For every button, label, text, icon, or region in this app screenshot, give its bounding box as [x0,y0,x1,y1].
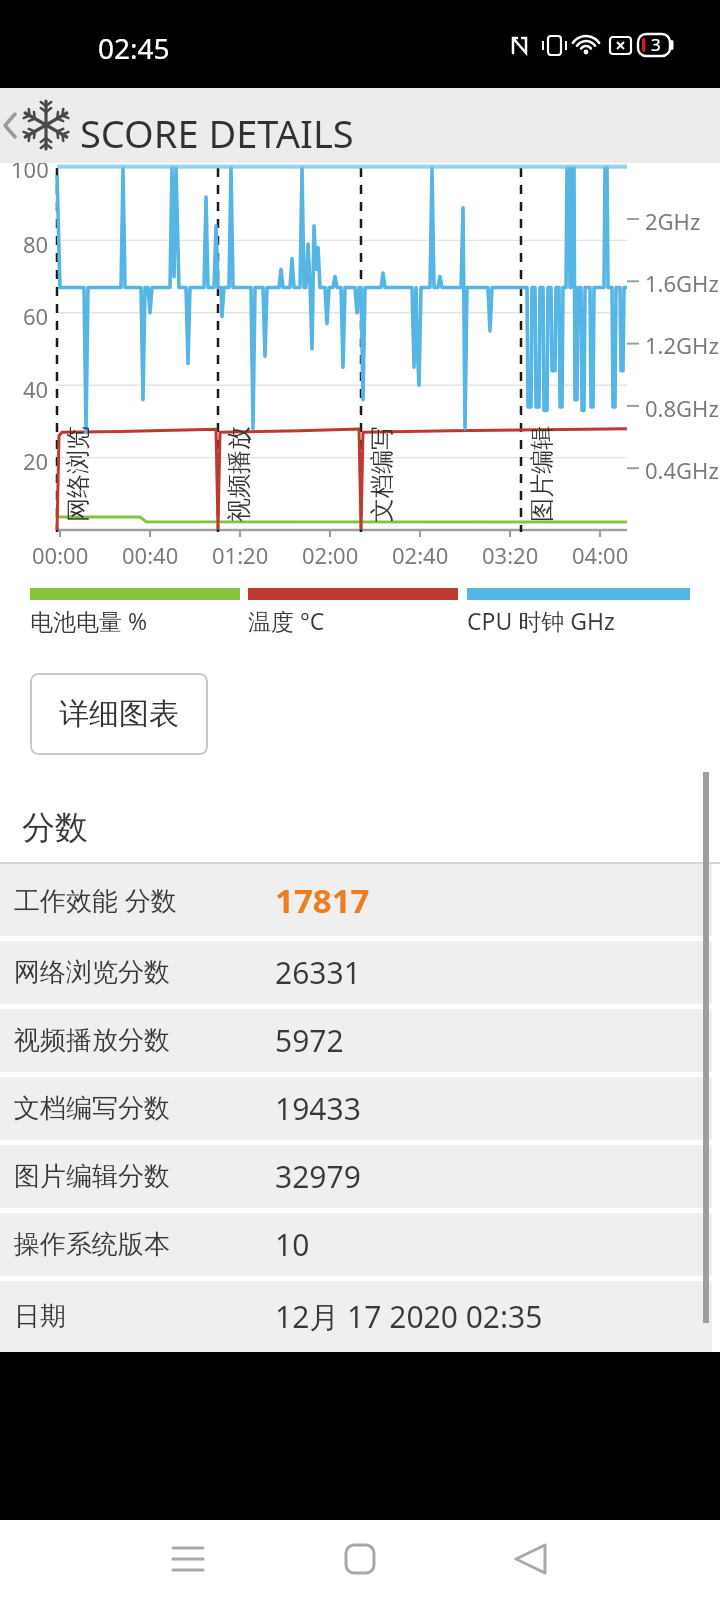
staticText: 32979 [275,1156,361,1197]
staticText: 图片编辑分数 [14,1160,170,1193]
staticText: 视频播放 [224,426,254,522]
staticText: 0.4GHz [645,455,719,485]
staticText: 04:00 [572,540,629,570]
staticText: 19433 [275,1088,361,1129]
staticText: 40 [23,374,49,404]
staticText: 12月 17 2020 02:35 [275,1296,543,1337]
staticText: 分数 [22,807,88,849]
button[interactable]: 网络浏览分数 [0,941,712,1004]
staticText: 60 [23,301,49,331]
button[interactable]: 工作效能 分数 [0,864,712,936]
staticText: CPU 时钟 GHz [467,605,615,636]
staticText: SCORE DETAILS [80,107,354,159]
staticText: 02:00 [302,540,359,570]
button[interactable]: 文档编写分数 [0,1077,712,1140]
staticText: 0.8GHz [645,393,719,423]
staticText: 视频播放分数 [14,1024,170,1057]
button[interactable]: 详细图表 [30,673,208,755]
staticText: 100 [11,163,49,184]
staticText: 02:40 [392,540,449,570]
button[interactable]: 图片编辑分数 [0,1145,712,1208]
staticText: 网络浏览 [63,426,93,522]
staticText: 图片编辑 [527,426,557,522]
button[interactable] [507,1535,557,1585]
staticText: 10 [275,1224,310,1265]
staticText: 5972 [275,1020,344,1061]
staticText: 80 [23,229,49,259]
staticText: 工作效能 分数 [14,882,177,918]
staticText: 2GHz [645,206,701,236]
button[interactable]: 操作系统版本 [0,1213,712,1276]
staticText: 温度 °C [248,605,325,636]
button[interactable] [0,88,24,163]
button[interactable] [163,1535,213,1585]
staticText: 02:45 [98,29,170,67]
staticText: 17817 [275,878,370,923]
button[interactable]: 视频播放分数 [0,1009,712,1072]
staticText: 03:20 [482,540,539,570]
staticText: 01:20 [212,540,269,570]
staticText: 详细图表 [59,695,179,733]
staticText: 00:00 [32,540,89,570]
staticText: 00:40 [122,540,179,570]
staticText: 文档编写 [367,426,397,522]
staticText: 日期 [14,1300,66,1333]
staticText: 文档编写分数 [14,1092,170,1125]
staticText: 26331 [275,952,361,993]
button[interactable]: 日期 [0,1281,712,1352]
staticText: 20 [23,446,49,476]
staticText: 网络浏览分数 [14,956,170,989]
staticText: 电池电量 % [30,605,148,636]
staticText: 1.6GHz [645,268,719,298]
button[interactable] [335,1535,385,1585]
staticText: 3 [651,33,661,56]
staticText: 1.2GHz [645,330,719,360]
staticText: 操作系统版本 [14,1228,170,1261]
